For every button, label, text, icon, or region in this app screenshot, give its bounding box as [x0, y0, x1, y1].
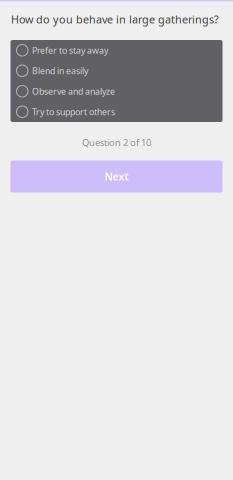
- button[interactable]: Observe and analyze: [10, 81, 222, 101]
- staticText: Prefer to stay away: [32, 44, 108, 56]
- staticText: Question 2 of 10: [82, 136, 151, 149]
- staticText: Observe and analyze: [32, 85, 115, 97]
- staticText: Try to support others: [32, 106, 115, 118]
- button[interactable]: Try to support others: [10, 101, 222, 122]
- staticText: How do you behave in large gatherings?: [11, 12, 219, 27]
- staticText: Next: [104, 169, 128, 184]
- staticText: Blend in easily: [32, 65, 88, 77]
- button[interactable]: Blend in easily: [10, 60, 222, 81]
- button[interactable]: Prefer to stay away: [10, 40, 222, 60]
- button[interactable]: Next: [10, 160, 222, 192]
